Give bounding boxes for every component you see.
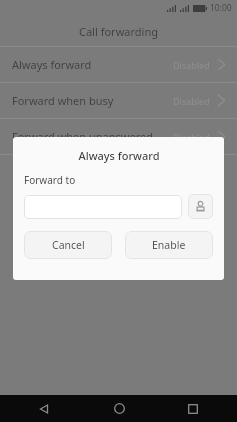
staticText: Forward when unanswered [12,129,153,144]
button[interactable]: Forward when unanswered [0,119,237,154]
staticText: Forward when busy [12,93,114,108]
staticText: Always forward [78,148,160,163]
button[interactable]: Recent apps [163,395,223,422]
button[interactable]: Always forward [0,47,237,82]
button[interactable]: Back [14,395,74,422]
button[interactable]: Forward when busy [0,83,237,118]
staticText: Always forward [12,57,92,72]
staticText: Disabled [173,131,210,143]
staticText: Forward to [24,173,76,187]
staticText: 10:00 [210,2,232,14]
staticText: Disabled [173,95,210,107]
button[interactable]: Enable [125,231,213,259]
button[interactable]: Home [89,395,149,422]
button[interactable] [24,195,182,219]
staticText: Call forwarding [79,24,158,39]
button[interactable]: Choose contact [188,194,213,219]
button[interactable]: Cancel [24,231,112,259]
staticText: Disabled [173,59,210,71]
staticText: Enable [152,238,186,252]
staticText: Cancel [52,238,85,252]
